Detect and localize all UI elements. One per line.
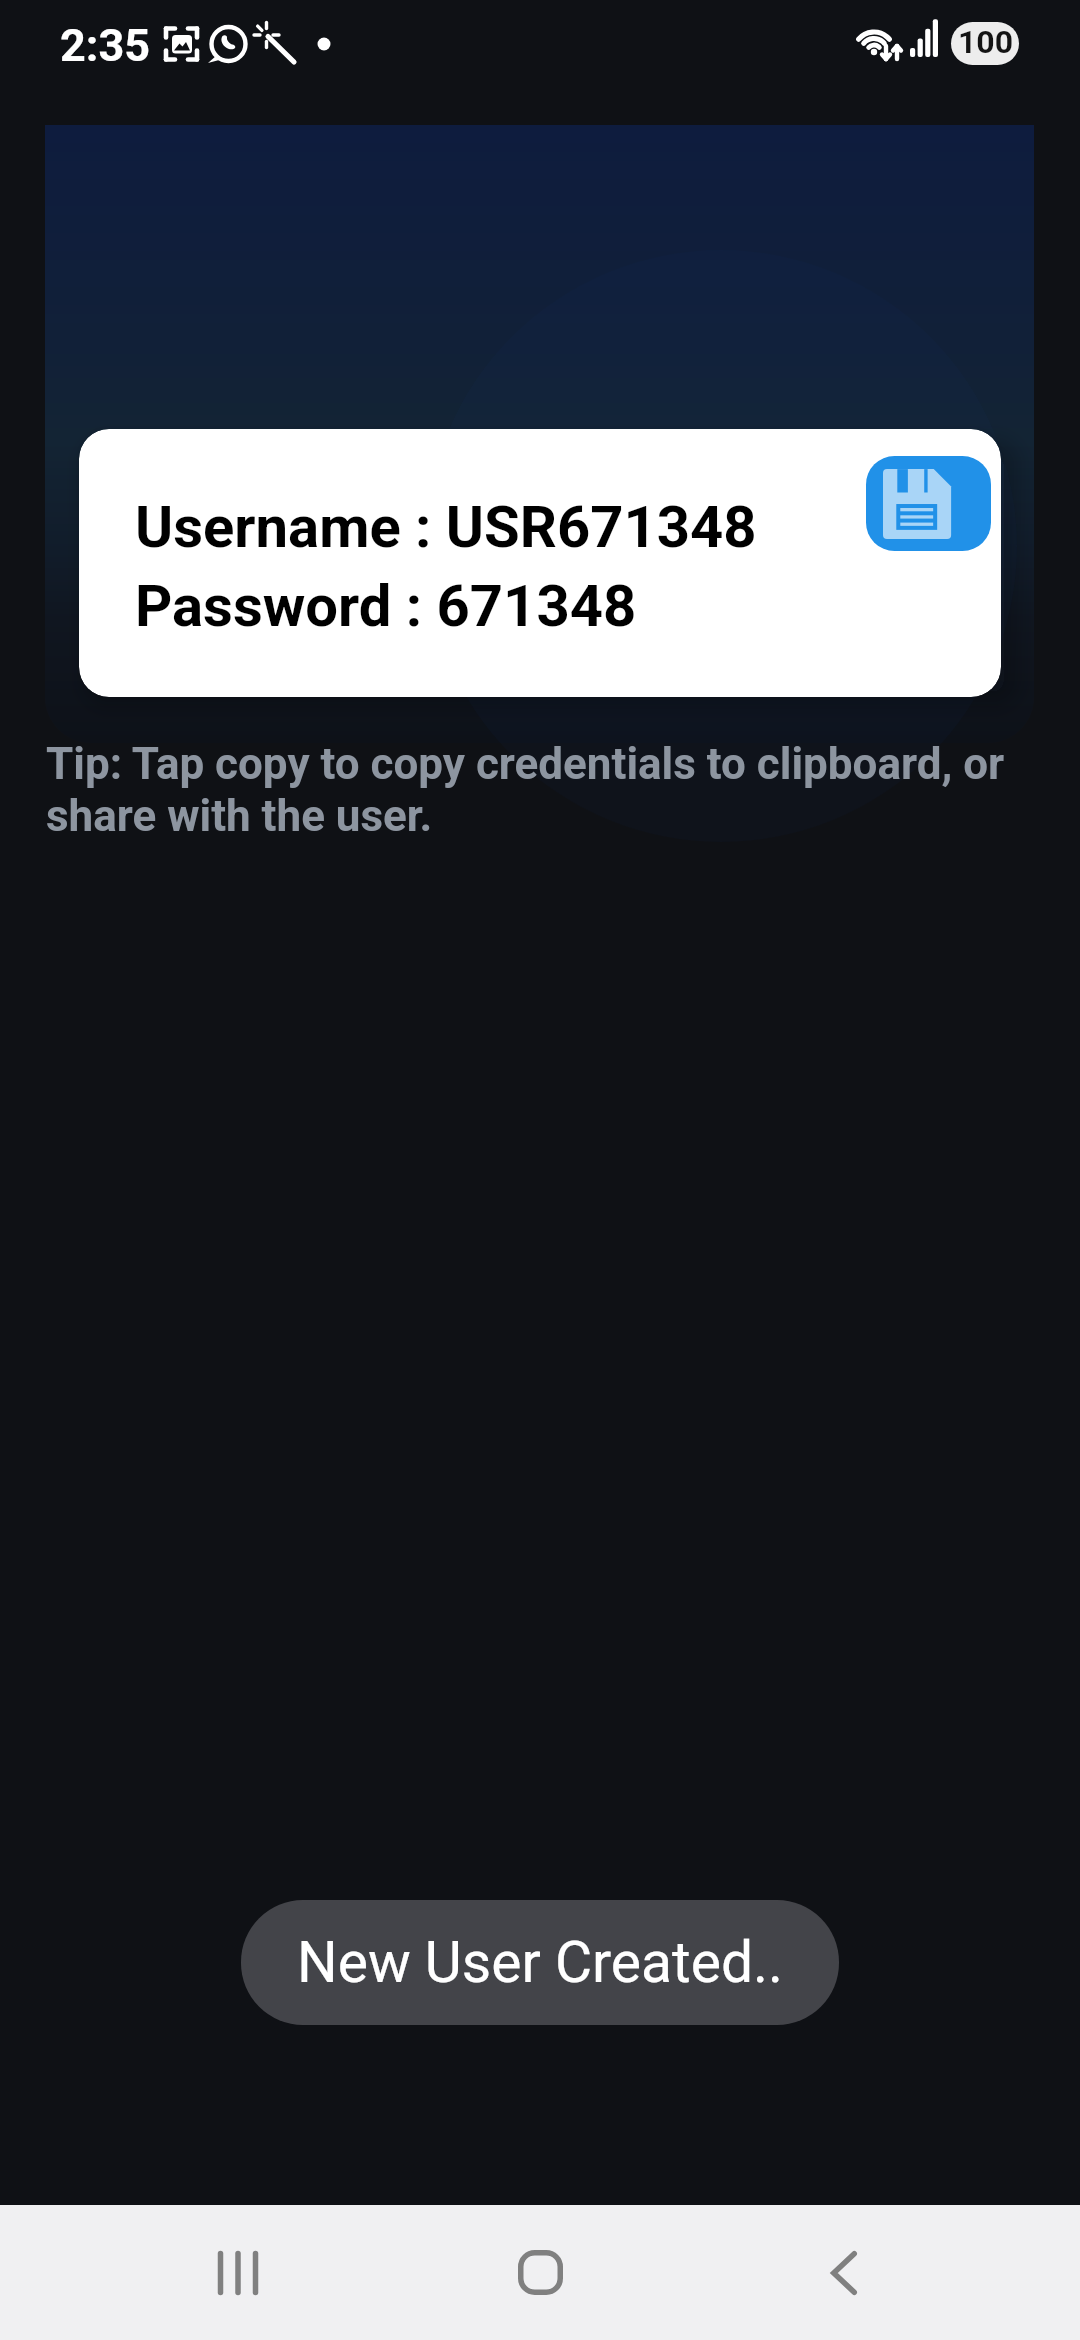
staticText: Username : USR671348 <box>135 493 757 561</box>
button[interactable]: Back <box>754 2205 934 2340</box>
button[interactable]: Username : USR671348 <box>79 429 1001 697</box>
staticText: New User Created.. <box>297 1929 784 1996</box>
button[interactable]: New User Created.. <box>241 1900 839 2025</box>
staticText: Tip: Tap copy to copy credentials to cli… <box>46 738 1031 842</box>
button[interactable]: Home <box>450 2205 630 2340</box>
button[interactable]: Copy credentials <box>866 456 991 551</box>
button[interactable]: Recent apps <box>148 2205 328 2340</box>
staticText: 100 <box>958 23 1014 61</box>
staticText: 2:35 <box>60 19 151 72</box>
staticText: Password : 671348 <box>135 572 637 640</box>
